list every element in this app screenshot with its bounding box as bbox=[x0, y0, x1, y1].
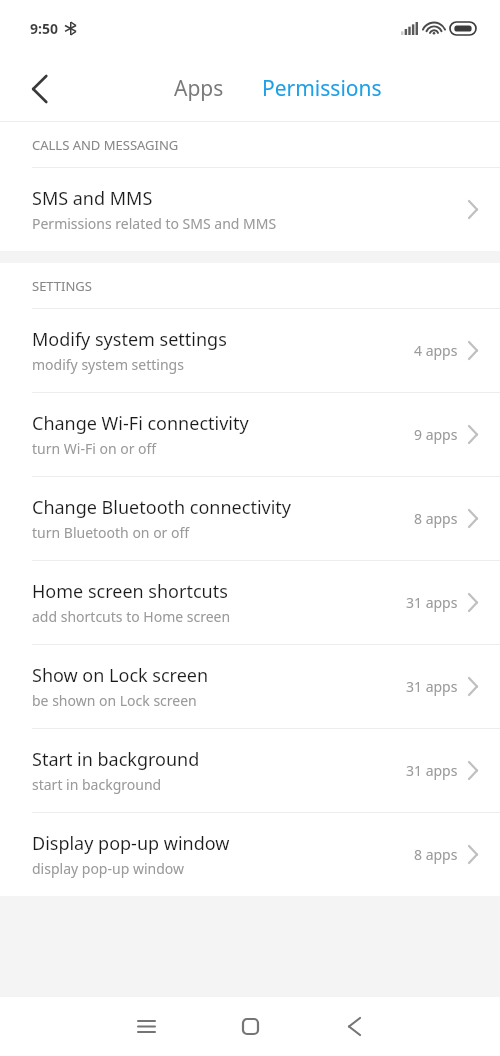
staticText: Start in background bbox=[32, 747, 200, 772]
staticText: 31 apps bbox=[406, 677, 458, 696]
staticText: 31 apps bbox=[406, 761, 458, 780]
staticText: Apps bbox=[174, 74, 224, 103]
button[interactable]: Permissions bbox=[254, 66, 390, 111]
staticText: Permissions related to SMS and MMS bbox=[32, 214, 277, 233]
staticText: CALLS AND MESSAGING bbox=[32, 136, 179, 154]
staticText: Modify system settings bbox=[32, 327, 227, 352]
staticText: 9 apps bbox=[414, 425, 458, 444]
button[interactable]: Menu bbox=[94, 997, 198, 1056]
button[interactable]: Change Wi-Fi connectivity bbox=[0, 393, 500, 476]
button[interactable]: Apps bbox=[160, 66, 238, 111]
button[interactable]: Modify system settings bbox=[0, 309, 500, 392]
staticText: Show on Lock screen bbox=[32, 663, 209, 688]
button[interactable]: SMS and MMS bbox=[0, 168, 500, 251]
staticText: 8 apps bbox=[414, 845, 458, 864]
staticText: 31 apps bbox=[406, 593, 458, 612]
staticText: Home screen shortcuts bbox=[32, 579, 228, 604]
staticText: SETTINGS bbox=[32, 277, 92, 295]
button[interactable]: Home bbox=[198, 997, 302, 1056]
button[interactable]: Show on Lock screen bbox=[0, 645, 500, 728]
staticText: turn Bluetooth on or off bbox=[32, 523, 190, 542]
staticText: 8 apps bbox=[414, 509, 458, 528]
staticText: Permissions bbox=[262, 74, 382, 103]
staticText: Change Bluetooth connectivity bbox=[32, 495, 292, 520]
button[interactable]: Start in background bbox=[0, 729, 500, 812]
button[interactable]: Display pop-up window bbox=[0, 813, 500, 896]
button[interactable]: Back bbox=[16, 65, 64, 113]
button[interactable]: Back bbox=[302, 997, 406, 1056]
button[interactable]: Home screen shortcuts bbox=[0, 561, 500, 644]
staticText: modify system settings bbox=[32, 355, 184, 374]
staticText: be shown on Lock screen bbox=[32, 691, 197, 710]
staticText: start in background bbox=[32, 775, 162, 794]
staticText: display pop-up window bbox=[32, 859, 184, 878]
staticText: Display pop-up window bbox=[32, 831, 230, 856]
button[interactable]: Change Bluetooth connectivity bbox=[0, 477, 500, 560]
staticText: add shortcuts to Home screen bbox=[32, 607, 231, 626]
staticText: 4 apps bbox=[414, 341, 458, 360]
staticText: 9:50 bbox=[30, 19, 58, 38]
staticText: Change Wi-Fi connectivity bbox=[32, 411, 249, 436]
staticText: turn Wi-Fi on or off bbox=[32, 439, 157, 458]
staticText: SMS and MMS bbox=[32, 186, 153, 211]
